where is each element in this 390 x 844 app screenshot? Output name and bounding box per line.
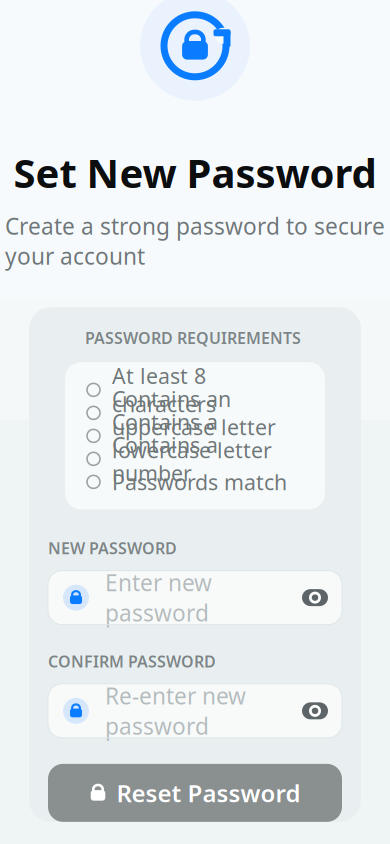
staticText: Create a strong password to secure your … bbox=[5, 211, 385, 271]
staticText: Contains an uppercase letter bbox=[112, 384, 276, 441]
staticText: Reset Password bbox=[116, 777, 300, 809]
staticText: At least 8 characters bbox=[112, 361, 216, 418]
button[interactable]: Show password bbox=[298, 581, 332, 615]
staticText: Re-enter new password bbox=[105, 681, 246, 741]
staticText: Set New Password bbox=[13, 146, 376, 199]
staticText: NEW PASSWORD bbox=[48, 537, 177, 559]
staticText: Enter new password bbox=[105, 567, 212, 628]
button[interactable]: Reset Password bbox=[48, 764, 342, 822]
staticText: Contains a lowercase letter bbox=[112, 407, 272, 464]
staticText: Contains a number bbox=[112, 430, 218, 487]
staticText: CONFIRM PASSWORD bbox=[48, 651, 216, 672]
button[interactable]: Show password bbox=[298, 694, 332, 728]
staticText: Passwords match bbox=[112, 468, 287, 496]
staticText: PASSWORD REQUIREMENTS bbox=[85, 327, 301, 348]
